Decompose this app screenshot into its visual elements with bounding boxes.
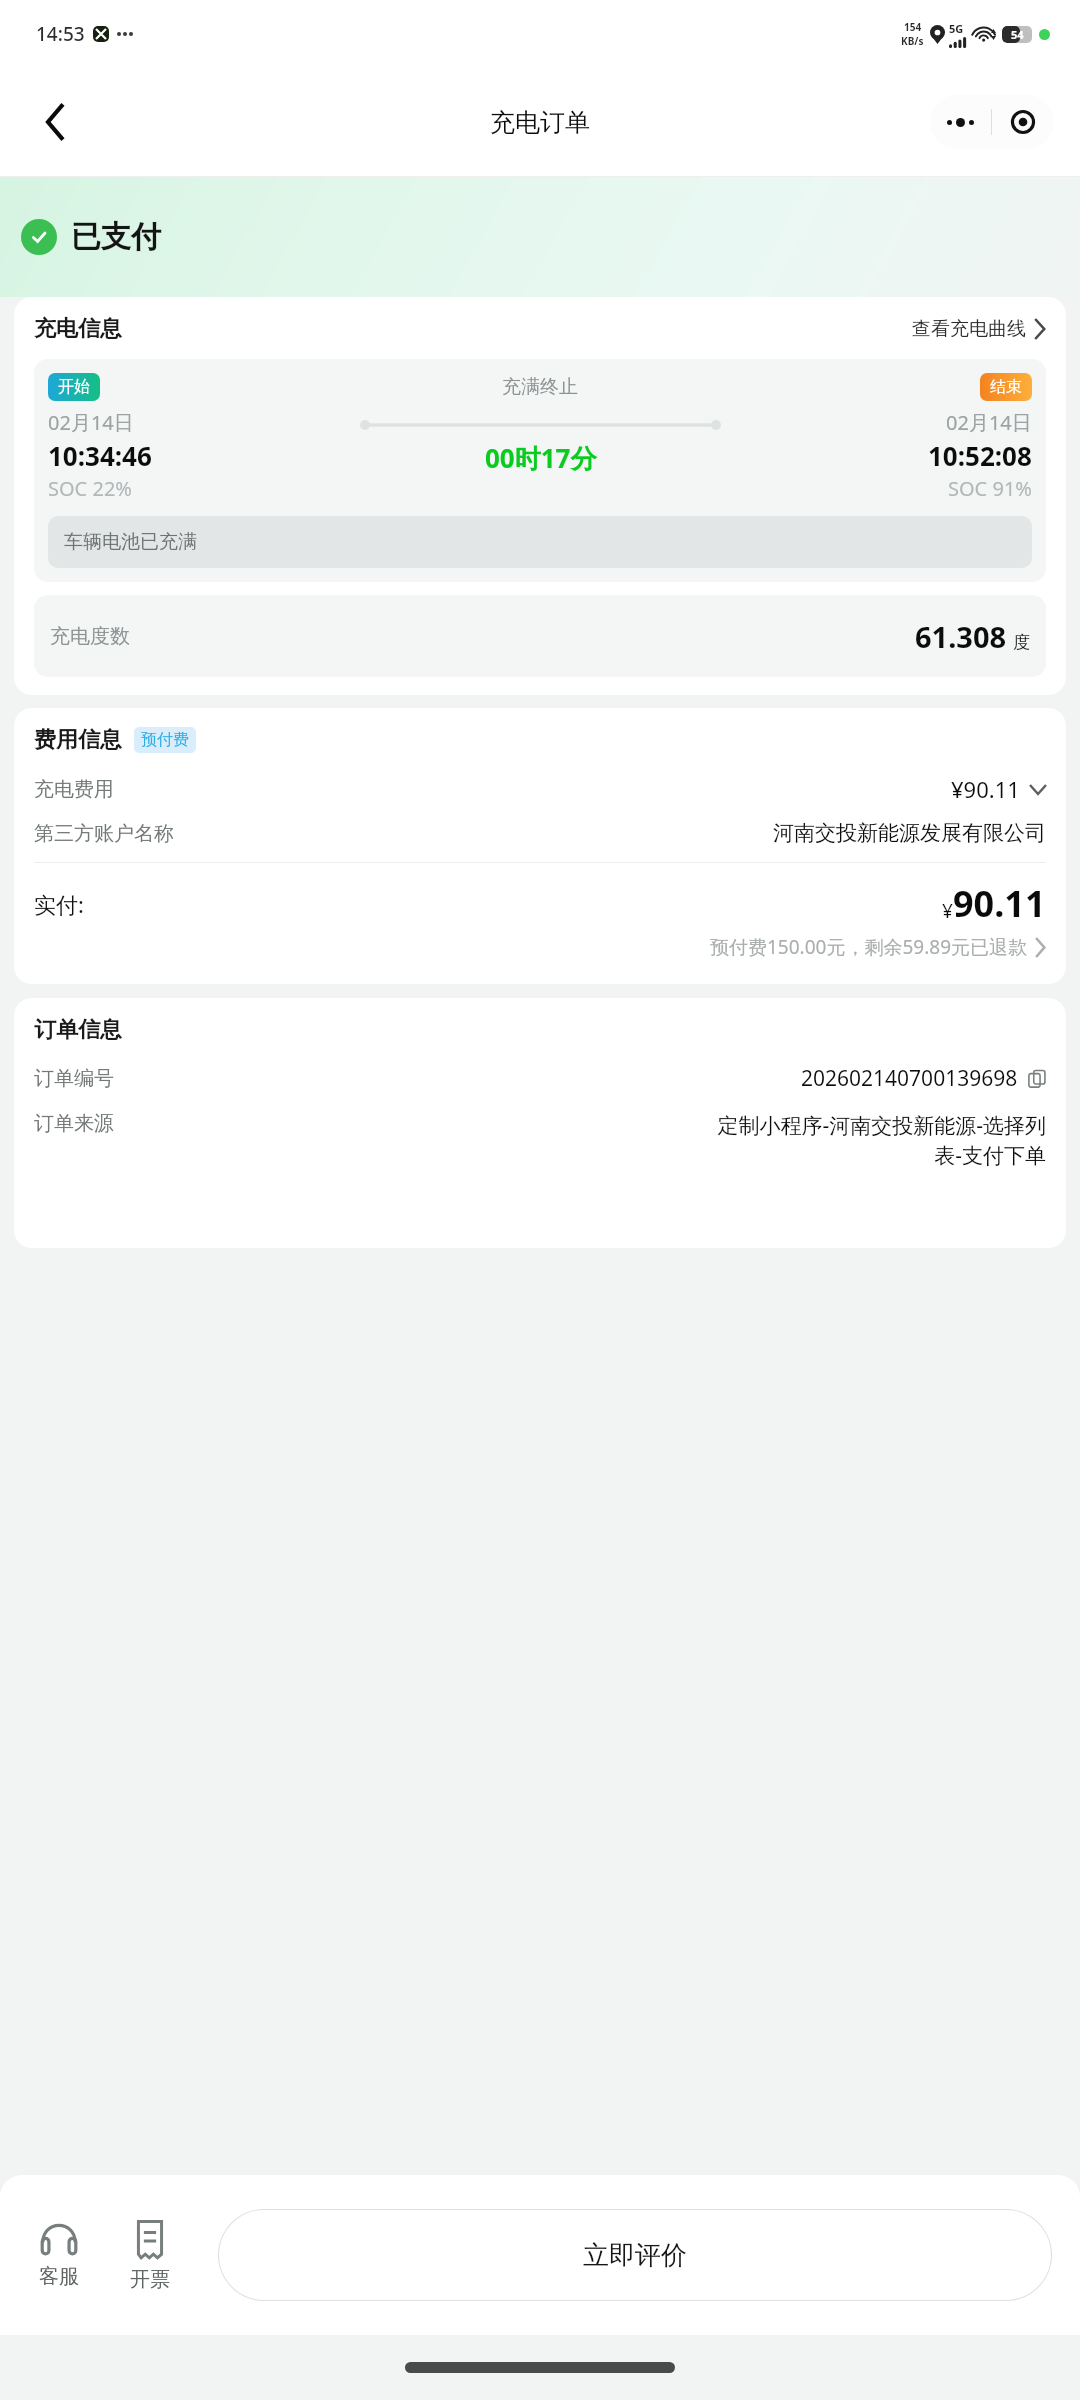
button[interactable]: 充电费用: [34, 774, 1046, 804]
staticText: 5G: [949, 21, 964, 36]
staticText: 结束: [990, 377, 1022, 397]
staticText: 61.308: [915, 617, 1007, 656]
staticText: 10:52:08: [928, 438, 1032, 473]
button[interactable]: 订单编号: [34, 1064, 1046, 1093]
staticText: 充电信息: [34, 315, 122, 343]
staticText: 02月14日: [48, 409, 134, 436]
staticText: 订单来源: [34, 1111, 114, 1136]
staticText: 54: [1011, 27, 1024, 42]
staticText: 开始: [58, 377, 90, 397]
staticText: KB/s: [901, 34, 924, 48]
button[interactable]: 开票: [126, 2219, 174, 2292]
staticText: 已支付: [71, 218, 161, 256]
staticText: 14:53: [36, 21, 85, 47]
staticText: 充电订单: [490, 107, 590, 138]
staticText: 第三方账户名称: [34, 821, 174, 846]
button[interactable]: Close: [992, 95, 1054, 149]
staticText: 度: [1013, 632, 1030, 653]
staticText: SOC 22%: [48, 475, 132, 502]
button[interactable]: 客服: [34, 2222, 84, 2289]
button[interactable]: More: [930, 95, 991, 149]
button[interactable]: 立即评价: [218, 2209, 1052, 2301]
staticText: 河南交投新能源发展有限公司: [773, 820, 1046, 846]
button[interactable]: Back: [34, 100, 78, 144]
staticText: 202602140700139698: [801, 1064, 1018, 1093]
staticText: 00时17分: [485, 440, 597, 476]
staticText: 90.11: [953, 879, 1046, 928]
staticText: 预付费150.00元，剩余59.89元已退款: [710, 934, 1027, 960]
staticText: 10:34:46: [48, 438, 152, 473]
other: Copy: [1028, 1070, 1046, 1088]
button[interactable]: 查看充电曲线: [912, 317, 1046, 341]
staticText: 02月14日: [946, 409, 1032, 436]
staticText: 费用信息: [34, 726, 122, 754]
staticText: 车辆电池已充满: [64, 530, 197, 554]
staticText: 订单信息: [34, 1016, 122, 1044]
staticText: 充电费用: [34, 777, 114, 802]
staticText: 充满终止: [502, 375, 578, 399]
staticText: 预付费: [141, 730, 189, 750]
button[interactable]: 预付费150.00元，剩余59.89元已退款: [34, 934, 1046, 960]
staticText: ¥: [942, 898, 953, 924]
staticText: 查看充电曲线: [912, 317, 1026, 341]
staticText: 154: [904, 20, 922, 34]
staticText: 实付:: [34, 889, 84, 919]
staticText: 充电度数: [50, 624, 130, 649]
staticText: 定制小程序-河南交投新能源-选择列 表-支付下单: [717, 1111, 1046, 1170]
staticText: 开票: [130, 2267, 170, 2292]
staticText: 客服: [39, 2264, 79, 2289]
staticText: 立即评价: [583, 2239, 687, 2272]
staticText: SOC 91%: [948, 475, 1032, 502]
staticText: 订单编号: [34, 1066, 114, 1091]
staticText: ¥90.11: [951, 774, 1020, 804]
